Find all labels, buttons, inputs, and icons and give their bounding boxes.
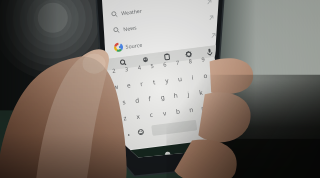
button[interactable]: Search keyboard bbox=[0, 0, 320, 178]
button[interactable]: Photo of a hand holding a phone showing … bbox=[0, 0, 320, 178]
